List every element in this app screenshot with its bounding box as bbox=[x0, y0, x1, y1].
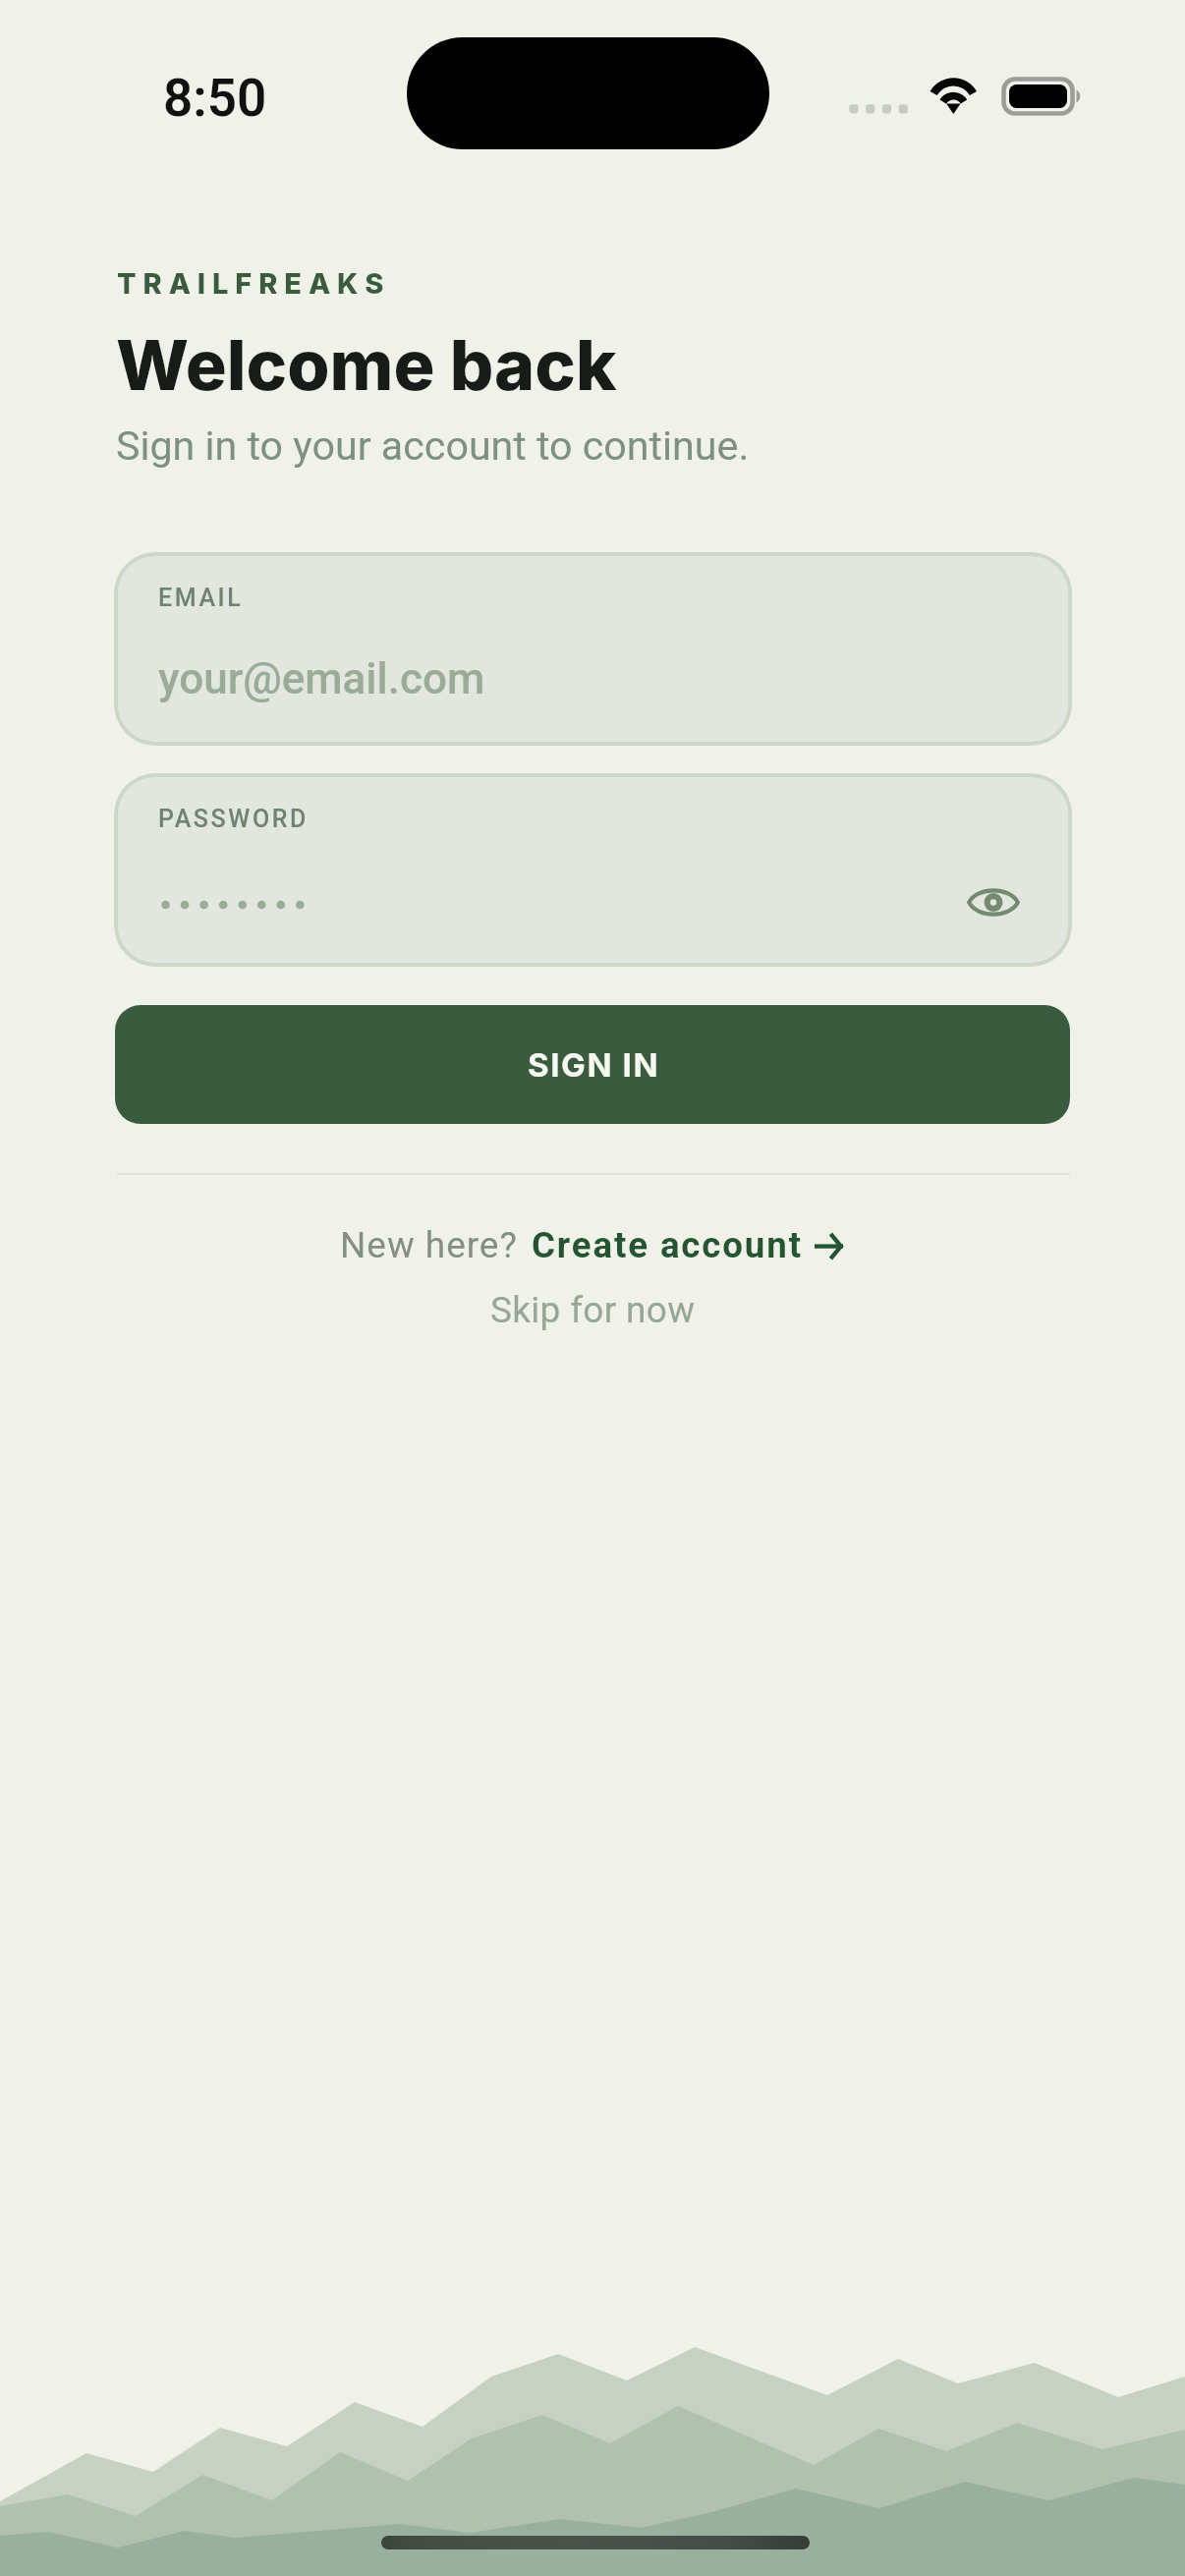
staticText: 8:50 bbox=[163, 68, 267, 129]
staticText: Welcome back bbox=[116, 323, 617, 407]
staticText: EMAIL bbox=[158, 584, 244, 612]
button[interactable]: PASSWORD bbox=[114, 773, 1072, 967]
button[interactable]: SIGN IN bbox=[115, 1005, 1070, 1124]
staticText: SIGN IN bbox=[528, 1045, 660, 1085]
staticText: TRAILFREAKS bbox=[117, 266, 391, 301]
staticText: Skip for now bbox=[490, 1289, 696, 1331]
staticText: PASSWORD bbox=[158, 805, 310, 833]
button[interactable]: Show password bbox=[958, 867, 1029, 937]
staticText: Sign in to your account to continue. bbox=[116, 422, 750, 470]
button[interactable]: Create account bbox=[518, 1224, 843, 1266]
staticText: your@email.com bbox=[158, 653, 485, 704]
staticText: Create account bbox=[532, 1224, 803, 1266]
staticText: New here? bbox=[340, 1224, 518, 1266]
button[interactable]: EMAIL bbox=[114, 552, 1072, 746]
button[interactable]: Skip for now bbox=[490, 1289, 696, 1331]
